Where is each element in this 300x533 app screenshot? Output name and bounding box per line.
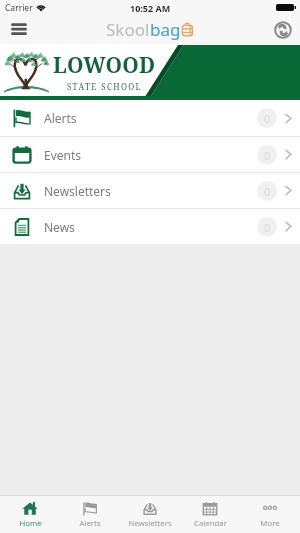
staticText: bag — [150, 18, 181, 41]
button[interactable]: Menu — [0, 15, 37, 44]
staticText: STATE SCHOOL — [67, 81, 143, 92]
staticText: Newsletters — [128, 518, 172, 529]
staticText: 0 — [264, 148, 271, 163]
button[interactable]: Newsletters — [0, 173, 300, 208]
staticText: More — [260, 518, 280, 529]
staticText: LOWOOD — [53, 51, 156, 80]
staticText: News — [44, 219, 75, 235]
staticText: 0 — [264, 111, 271, 126]
button[interactable]: News — [0, 209, 300, 244]
staticText: Alerts — [79, 518, 101, 529]
staticText: Newsletters — [44, 183, 111, 199]
button[interactable]: Home — [0, 496, 60, 533]
staticText: 0 — [264, 220, 271, 235]
button[interactable]: Newsletters — [120, 496, 180, 533]
staticText: Events — [44, 147, 82, 163]
staticText: 10:52 AM — [130, 2, 171, 14]
button[interactable]: Alerts — [0, 100, 300, 136]
button[interactable]: Refresh — [270, 15, 296, 44]
button[interactable]: Alerts — [60, 496, 120, 533]
staticText: Carrier — [5, 2, 33, 14]
staticText: 0 — [264, 184, 271, 199]
staticText: Calendar — [194, 518, 227, 529]
staticText: Skool — [106, 18, 150, 41]
button[interactable]: Calendar — [180, 496, 240, 533]
staticText: Home — [19, 518, 42, 529]
button[interactable]: Events — [0, 137, 300, 172]
staticText: Alerts — [44, 110, 77, 126]
button[interactable]: More — [240, 496, 300, 533]
